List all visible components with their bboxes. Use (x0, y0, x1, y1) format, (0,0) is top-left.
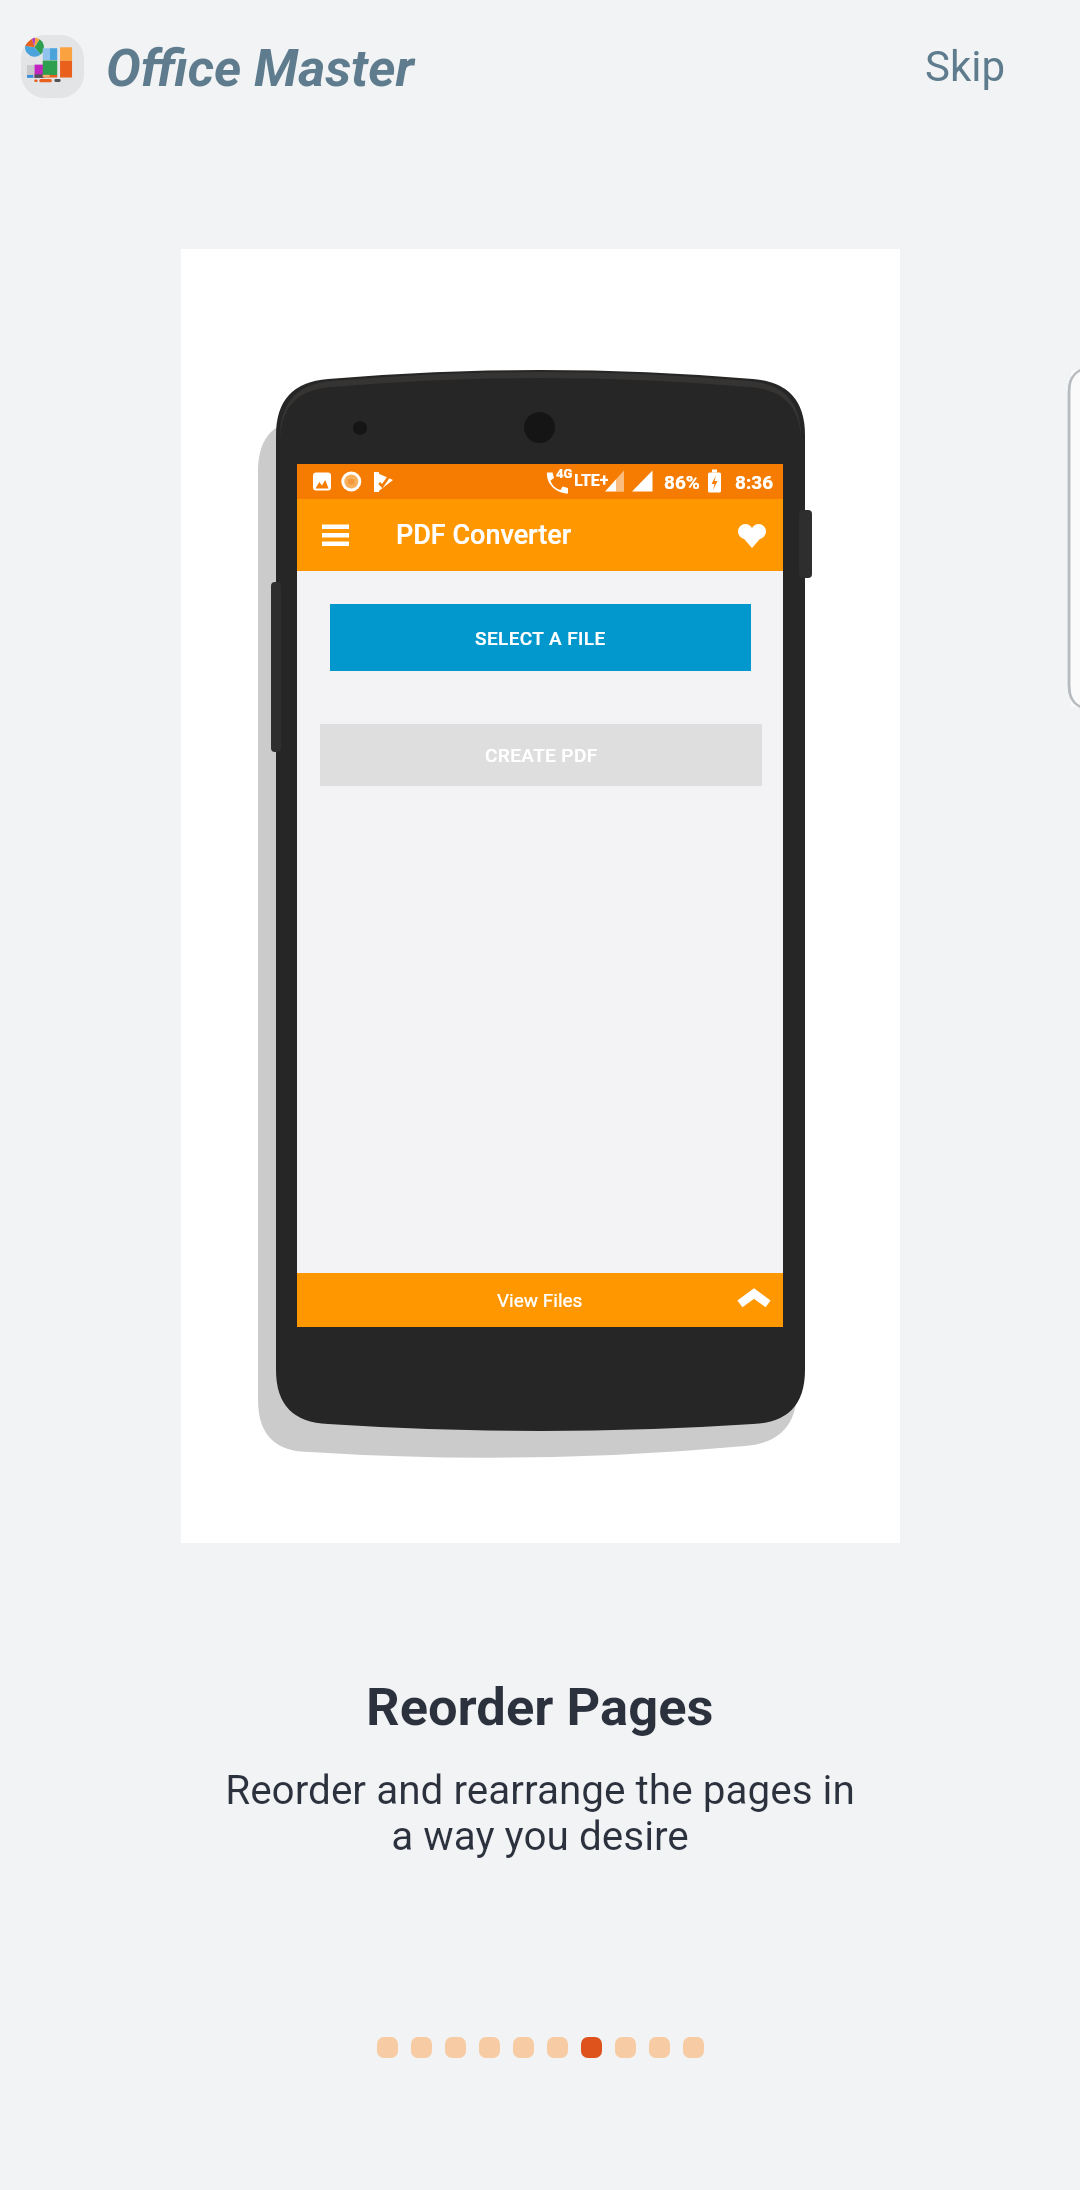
staticText: SELECT A FILE (475, 627, 606, 649)
staticText: PDF Converter (396, 519, 572, 551)
button[interactable]: Page 8 (615, 2037, 636, 2058)
staticText: 4G (556, 466, 573, 481)
staticText: Reorder Pages (366, 1676, 714, 1738)
button[interactable]: Page 6 (547, 2037, 568, 2058)
staticText: Skip (925, 42, 1006, 91)
button[interactable]: Page 3 (445, 2037, 466, 2058)
staticText: 86% (664, 471, 700, 493)
button[interactable]: Page 5 (513, 2037, 534, 2058)
button[interactable]: Open navigation menu (310, 510, 360, 560)
button[interactable]: Page 7 (581, 2037, 602, 2058)
staticText: LTE+ (574, 471, 609, 490)
button[interactable]: Page 9 (649, 2037, 670, 2058)
button[interactable]: SELECT A FILE (330, 604, 751, 671)
staticText: 8:36 (735, 471, 774, 493)
staticText: Reorder and rearrange the pages in a way… (225, 1766, 855, 1860)
button[interactable]: CREATE PDF (320, 724, 762, 786)
staticText: Office Master (106, 38, 414, 99)
staticText: View Files (497, 1289, 583, 1311)
button[interactable]: Page 10 (683, 2037, 704, 2058)
staticText: CREATE PDF (485, 744, 598, 766)
button[interactable]: Page 1 (377, 2037, 398, 2058)
button[interactable]: Favorite (730, 513, 774, 557)
button[interactable]: Page 2 (411, 2037, 432, 2058)
button[interactable]: Page 4 (479, 2037, 500, 2058)
button[interactable]: Skip (895, 16, 1036, 117)
button[interactable]: View Files (297, 1273, 783, 1327)
